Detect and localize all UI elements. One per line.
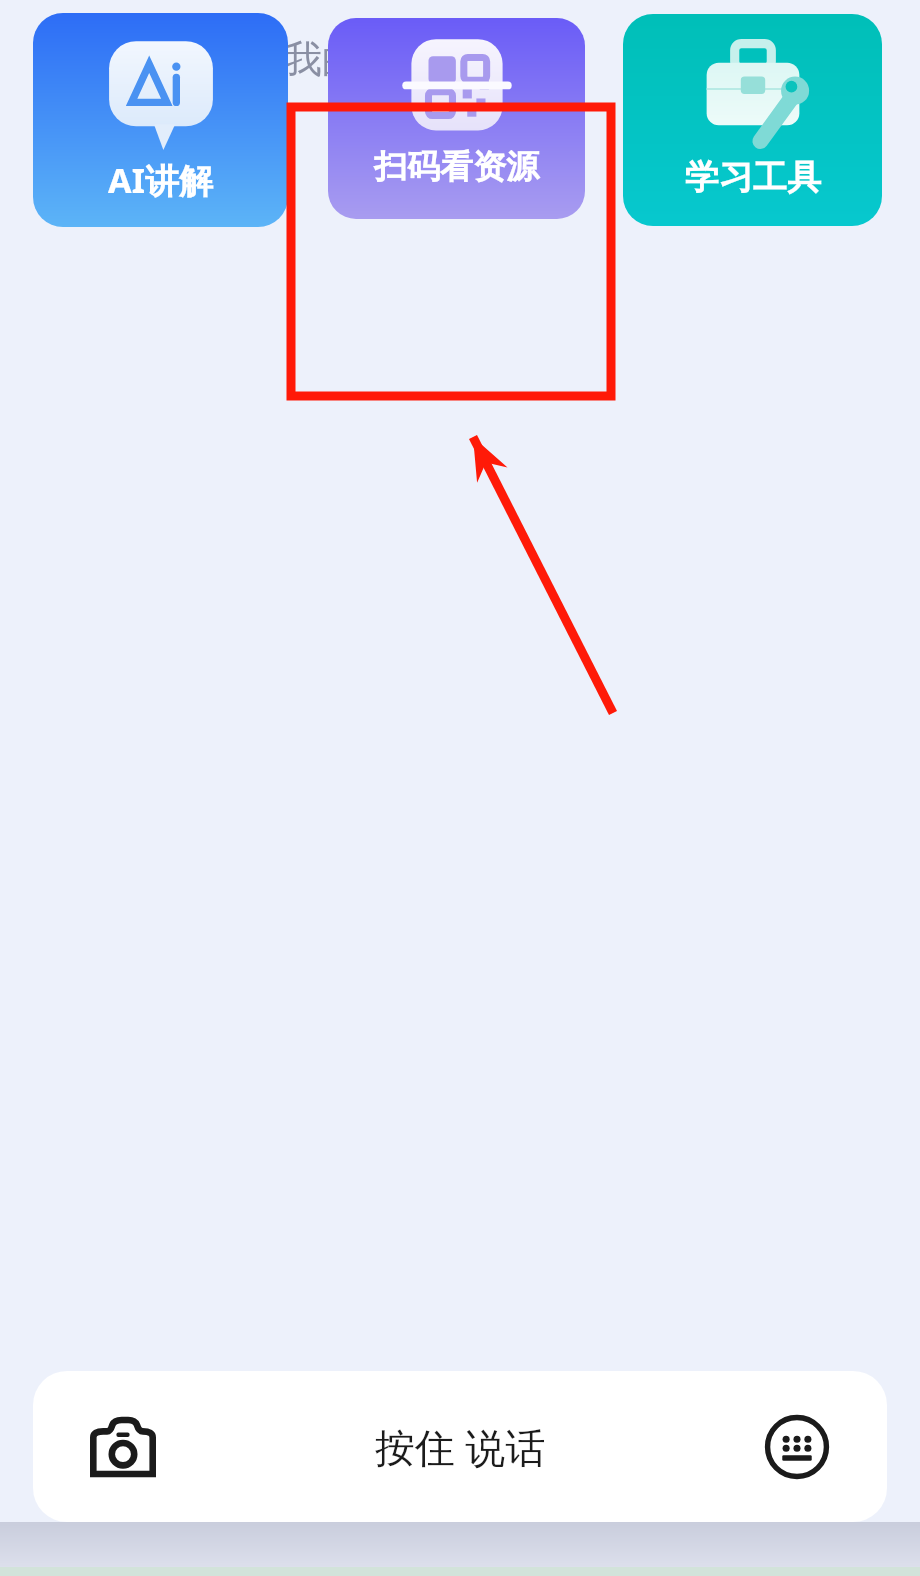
staticText: 按住 说话 — [375, 1419, 546, 1474]
staticText: 扫码看资源 — [374, 146, 539, 188]
button[interactable]: 我的 — [284, 35, 360, 83]
button[interactable]: Scan — [790, 16, 876, 102]
button[interactable]: AI讲解 — [33, 13, 288, 227]
button[interactable]: Menu — [52, 32, 106, 86]
button[interactable]: 书链 — [130, 29, 230, 89]
button[interactable]: 扫码看资源 — [328, 18, 585, 219]
staticText: 书链 — [140, 34, 220, 84]
staticText: 我的 — [284, 35, 360, 83]
staticText: 学习工具 — [685, 156, 821, 199]
staticText: AI讲解 — [108, 157, 213, 203]
button[interactable]: Keyboard — [755, 1405, 839, 1489]
button[interactable]: 学习工具 — [623, 14, 882, 226]
button[interactable]: Camera — [81, 1405, 165, 1489]
button[interactable]: Camera — [33, 1371, 887, 1522]
